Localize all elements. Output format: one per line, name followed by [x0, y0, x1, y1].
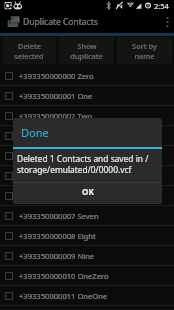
button[interactable]: +393350000011 OneOne — [0, 286, 174, 305]
button[interactable]: +393350000000 Zero — [0, 66, 174, 85]
button[interactable]: More options — [160, 11, 174, 33]
staticText: Delete — [18, 41, 41, 51]
staticText: name — [134, 51, 155, 61]
staticText: +393350000006 Six — [19, 191, 88, 201]
staticText: +393350000001 One — [19, 91, 93, 101]
button[interactable]: +393350000008 Eight — [0, 226, 174, 245]
button[interactable]: Delete — [2, 37, 56, 64]
button[interactable]: +393350000007 Seven — [0, 206, 174, 225]
staticText: Sort by — [132, 41, 157, 51]
button[interactable]: +393350000004 Four — [0, 146, 174, 165]
staticText: Duplicate Contacts — [23, 16, 98, 28]
button[interactable]: +393350000010 OneZero — [0, 266, 174, 285]
staticText: Done — [21, 125, 49, 140]
button[interactable]: +393350000006 Six — [0, 186, 174, 205]
staticText: +393350000003 Three — [19, 131, 98, 141]
staticText: +393350000002 Two — [19, 111, 93, 121]
staticText: Deleted 1 Contacts and saved in / — [17, 153, 149, 164]
button[interactable]: +393350000009 Nine — [0, 246, 174, 265]
button[interactable]: Show — [59, 37, 114, 64]
staticText: storage/emulated/0/0000.vcf — [17, 164, 132, 175]
staticText: +393350000011 OneOne — [19, 291, 108, 301]
button[interactable]: +393350000001 One — [0, 86, 174, 105]
button[interactable]: +393350000005 Five — [0, 166, 174, 185]
staticText: duplicate — [70, 51, 103, 61]
staticText: +393350000005 Five — [19, 171, 92, 181]
staticText: +393350000010 OneZero — [19, 271, 109, 281]
staticText: +393350000008 Eight — [19, 231, 96, 241]
staticText: +393350000009 Nine — [19, 251, 95, 261]
button[interactable]: +393350000002 Two — [0, 106, 174, 125]
button[interactable]: +393350000003 Three — [0, 126, 174, 145]
staticText: +393350000000 Zero — [19, 71, 94, 81]
staticText: selected — [14, 51, 44, 61]
staticText: OK — [82, 186, 94, 197]
button[interactable]: Sort by — [117, 37, 172, 64]
staticText: +393350000004 Four — [19, 151, 94, 161]
staticText: +393350000007 Seven — [19, 211, 99, 221]
staticText: 2:54 — [154, 1, 169, 11]
staticText: Show — [77, 41, 97, 51]
button[interactable]: OK — [13, 183, 162, 204]
